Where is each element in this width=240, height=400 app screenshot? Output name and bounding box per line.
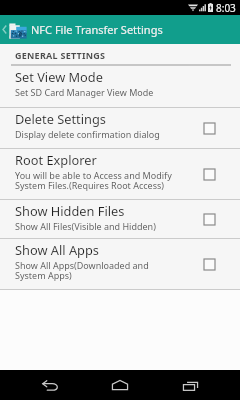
staticText: Root Explorer	[15, 151, 97, 168]
button[interactable]: Home	[96, 370, 144, 400]
button[interactable]: Root Explorer	[0, 149, 240, 199]
button[interactable]: Delete Settings	[0, 108, 240, 148]
button[interactable]: Show Hidden Files checkbox	[199, 209, 219, 229]
button[interactable]: Show All Apps checkbox	[199, 254, 219, 274]
staticText: You will be able to Access and Modify Sy…	[15, 169, 172, 192]
staticText: NFC File Transfer Settings	[31, 22, 163, 37]
button[interactable]: Root Explorer checkbox	[199, 164, 219, 184]
staticText: 8:03	[216, 1, 236, 15]
staticText: Delete Settings	[15, 110, 106, 127]
staticText: Show All Apps	[15, 241, 99, 258]
staticText: Show All Apps(Downloaded and System Apps…	[15, 259, 149, 282]
staticText: GENERAL SETTINGS	[15, 49, 106, 61]
staticText: Show All Files(Visible and Hidden)	[15, 220, 156, 232]
staticText: Show Hidden Files	[15, 202, 125, 219]
button[interactable]: Show All Apps	[0, 239, 240, 289]
button[interactable]: Navigate up	[1, 15, 8, 44]
button[interactable]: Show Hidden Files	[0, 200, 240, 238]
staticText: Set View Mode	[15, 68, 103, 85]
staticText: Display delete confirmation dialog	[15, 128, 160, 140]
button[interactable]: Delete Settings checkbox	[199, 118, 219, 138]
button[interactable]: Recent apps	[166, 370, 214, 400]
button[interactable]: Back	[26, 370, 74, 400]
staticText: Set SD Card Manager View Mode	[15, 86, 154, 98]
button[interactable]: Set View Mode	[0, 66, 240, 107]
